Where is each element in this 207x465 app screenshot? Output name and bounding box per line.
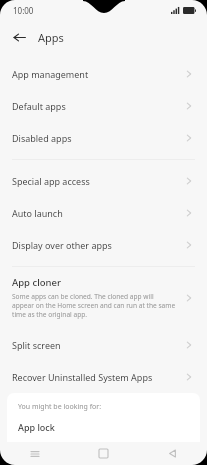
staticText: Display over other apps [12, 239, 112, 251]
button[interactable]: Auto launch [0, 197, 207, 229]
staticText: App management [12, 68, 89, 80]
staticText: Auto launch [12, 207, 63, 219]
button[interactable]: App lock [18, 421, 189, 433]
staticText: You might be looking for: [18, 402, 102, 412]
button[interactable]: Split screen [0, 329, 207, 361]
staticText: Split screen [12, 339, 61, 351]
staticText: Apps [38, 30, 64, 45]
staticText: Special app access [12, 175, 90, 187]
button[interactable]: App management [0, 58, 207, 90]
staticText: App lock [18, 421, 55, 433]
staticText: 10:00 [13, 5, 34, 16]
button[interactable]: Recent apps [0, 442, 69, 465]
button[interactable]: Special app access [0, 165, 207, 197]
button[interactable]: App cloner [0, 267, 207, 325]
staticText: Some apps can be cloned. The cloned app … [12, 292, 177, 319]
button[interactable]: Recover Uninstalled System Apps [0, 361, 207, 393]
button[interactable]: Back [7, 25, 31, 49]
button[interactable]: Default apps [0, 90, 207, 122]
button[interactable]: Disabled apps [0, 122, 207, 154]
button[interactable]: Back [138, 442, 207, 465]
staticText: Recover Uninstalled System Apps [12, 371, 153, 383]
button[interactable]: Home [69, 442, 138, 465]
staticText: App cloner [12, 276, 61, 289]
staticText: Default apps [12, 100, 66, 112]
staticText: Disabled apps [12, 132, 72, 144]
button[interactable]: Display over other apps [0, 229, 207, 261]
